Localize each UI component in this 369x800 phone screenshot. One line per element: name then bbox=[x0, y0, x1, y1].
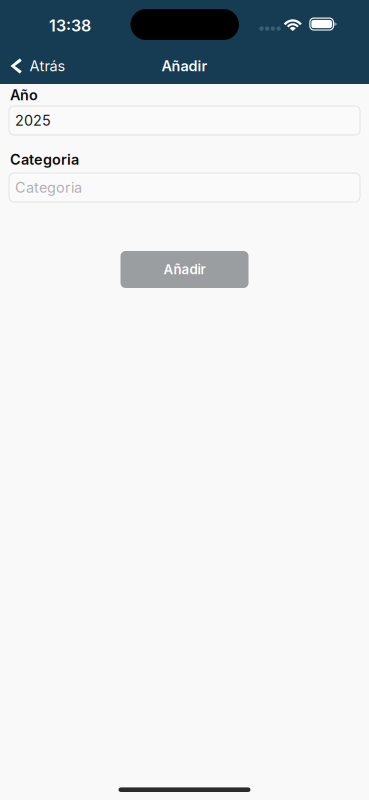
staticText: Categoria bbox=[10, 151, 79, 168]
button[interactable]: Atrás bbox=[0, 48, 84, 84]
staticText: Atrás bbox=[29, 57, 65, 75]
staticText: Añadir bbox=[161, 57, 207, 75]
staticText: Año bbox=[10, 86, 38, 104]
staticText: Añadir bbox=[163, 261, 205, 278]
staticText: 2025 bbox=[15, 112, 51, 129]
staticText: 13:38 bbox=[49, 16, 91, 35]
staticText: Categoria bbox=[15, 179, 82, 196]
button[interactable]: Añadir bbox=[120, 251, 248, 288]
